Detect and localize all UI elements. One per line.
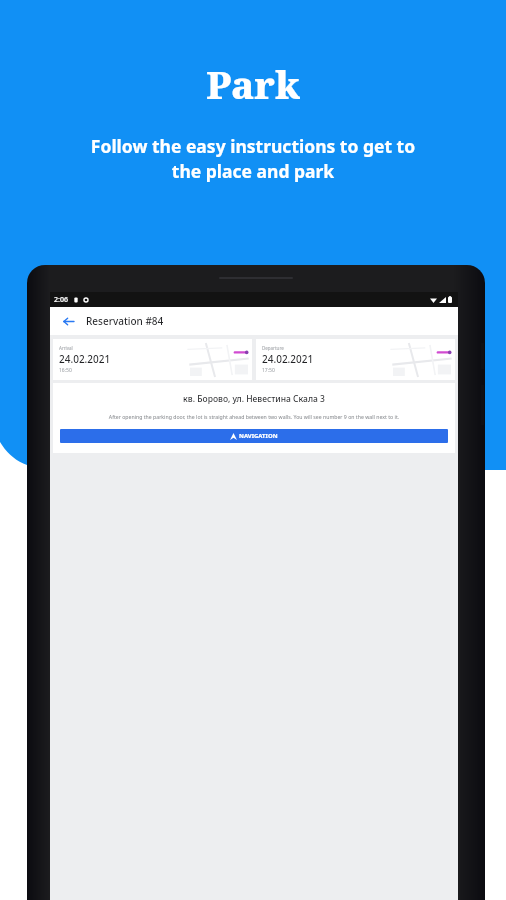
staticText: 2:06 [54,295,68,305]
button[interactable]: Back [58,311,78,331]
button[interactable]: Arrival [53,339,252,380]
staticText: Park [206,58,300,110]
staticText: 17:50 [262,367,275,374]
button[interactable]: Departure [256,339,455,380]
staticText: After opening the parking door, the lot … [58,413,450,420]
staticText: Arrival [59,345,73,351]
staticText: Departure [262,345,284,351]
button[interactable]: NAVIGATION [60,429,448,443]
staticText: Follow the easy instructions to get to t… [26,134,480,184]
staticText: NAVIGATION [239,432,278,440]
staticText: 24.02.2021 [59,352,111,366]
staticText: Reservation #84 [86,314,164,328]
staticText: кв. Борово, ул. Невестина Скала 3 [53,393,455,405]
staticText: 16:50 [59,367,72,374]
staticText: 24.02.2021 [262,352,314,366]
